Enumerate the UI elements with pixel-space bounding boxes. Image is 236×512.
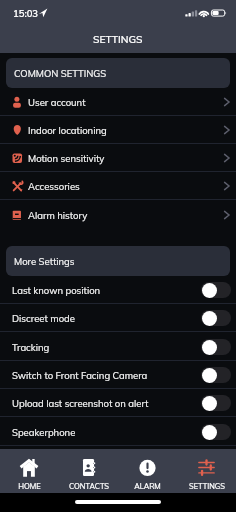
staticText: SETTINGS xyxy=(189,481,225,490)
staticText: Indoor locationing xyxy=(28,124,107,136)
button[interactable]: Switch to Front Facing Camera xyxy=(0,361,236,389)
staticText: HOME xyxy=(18,481,41,490)
staticText: Upload last screenshot on alert xyxy=(12,397,149,409)
button[interactable]: Accessories xyxy=(0,172,236,200)
staticText: Speakerphone xyxy=(12,426,76,438)
button[interactable]: Tracking xyxy=(0,333,236,361)
button[interactable]: User account xyxy=(0,88,236,116)
staticText: 15:03 xyxy=(13,7,39,19)
staticText: Alarm history xyxy=(28,209,88,221)
staticText: ALARM xyxy=(134,481,161,490)
staticText: Tracking xyxy=(12,341,50,353)
button[interactable]: HOME xyxy=(0,449,59,493)
button[interactable]: Discreet mode xyxy=(0,304,236,332)
staticText: Switch to Front Facing Camera xyxy=(12,369,148,381)
staticText: User account xyxy=(28,96,86,108)
button[interactable]: CONTACTS xyxy=(59,449,118,493)
button[interactable]: ALARM xyxy=(118,449,177,493)
staticText: Motion sensitivity xyxy=(28,152,105,164)
staticText: More Settings xyxy=(14,255,75,267)
button[interactable]: Upload last screenshot on alert xyxy=(0,389,236,417)
staticText: Last known position xyxy=(12,284,101,296)
button[interactable]: Last known position xyxy=(0,276,236,304)
button[interactable]: Alarm history xyxy=(0,201,236,229)
button[interactable]: Motion sensitivity xyxy=(0,144,236,172)
staticText: Accessories xyxy=(28,180,80,192)
button[interactable]: Speakerphone xyxy=(0,418,236,446)
staticText: CONTACTS xyxy=(69,481,109,490)
staticText: COMMON SETTINGS xyxy=(14,67,107,79)
staticText: Discreet mode xyxy=(12,312,75,324)
staticText: SETTINGS xyxy=(93,33,143,46)
button[interactable]: Indoor locationing xyxy=(0,116,236,144)
button[interactable]: SETTINGS xyxy=(177,449,236,493)
